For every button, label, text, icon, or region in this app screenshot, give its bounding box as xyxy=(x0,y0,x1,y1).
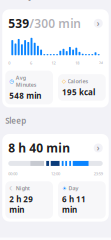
staticText: 8 h 40 min xyxy=(8,140,70,156)
staticText: ◷ xyxy=(9,78,14,84)
staticText: 00:00 xyxy=(8,171,17,176)
staticText: 548 min xyxy=(9,90,41,101)
staticText: Avg Minutes xyxy=(16,74,37,88)
staticText: 23:59 xyxy=(94,171,103,176)
staticText: Night xyxy=(16,185,30,192)
staticText: 12:00 xyxy=(51,171,60,176)
staticText: 2 h 29 min xyxy=(9,194,33,215)
staticText: /300 min xyxy=(29,15,81,31)
staticText: 539 xyxy=(8,15,29,31)
staticText: 195 kcal xyxy=(62,87,95,97)
staticText: › xyxy=(97,18,100,29)
button[interactable]: ☾ xyxy=(5,181,53,218)
staticText: 18 xyxy=(75,60,79,66)
staticText: 0 xyxy=(8,60,10,66)
staticText: 6 h 11 min xyxy=(62,194,86,215)
staticText: 6 xyxy=(30,60,32,66)
button[interactable]: ☀ xyxy=(58,181,106,218)
staticText: 12 xyxy=(51,60,55,66)
staticText: ◇ xyxy=(62,78,66,84)
button[interactable]: 539 xyxy=(2,9,109,70)
button[interactable]: ◇ xyxy=(58,74,106,101)
staticText: Day xyxy=(68,185,78,192)
staticText: › xyxy=(97,143,100,153)
staticText: Sleep xyxy=(5,115,26,126)
button[interactable]: ◷ xyxy=(5,71,53,104)
staticText: 24 xyxy=(99,60,103,66)
staticText: Calories xyxy=(67,78,88,85)
button[interactable]: 8 h 40 min xyxy=(2,134,109,181)
staticText: Activity xyxy=(5,0,32,1)
staticText: ☾ xyxy=(9,185,14,191)
staticText: ☀ xyxy=(62,185,67,191)
